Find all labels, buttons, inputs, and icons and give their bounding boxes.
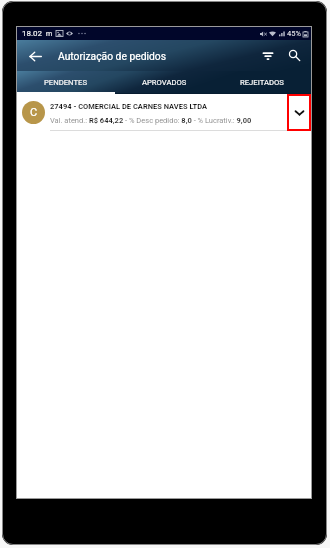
button[interactable]: Back [22, 43, 48, 69]
staticText: Autorização de pedidos [58, 50, 166, 62]
button[interactable]: REJEITADOS [213, 71, 311, 94]
staticText: m [46, 30, 53, 38]
staticText: C [30, 106, 38, 119]
staticText: 27494 - COMERCIAL DE CARNES NAVES LTDA [50, 102, 208, 111]
staticText: REJEITADOS [240, 78, 284, 87]
button[interactable]: APROVADOS [115, 71, 213, 94]
button[interactable]: C [17, 94, 311, 130]
staticText: 45% [287, 29, 301, 38]
staticText: Val. atend.: R$ 644,22 - % Desc pedido: … [50, 116, 252, 125]
staticText: APROVADOS [142, 78, 187, 87]
button[interactable]: PENDENTES [17, 71, 115, 94]
staticText: 18.02 [22, 29, 43, 38]
button[interactable]: Expand item [287, 94, 311, 131]
staticText: PENDENTES [44, 78, 88, 87]
button[interactable]: Search [282, 43, 308, 69]
button[interactable]: Filter [255, 43, 281, 69]
